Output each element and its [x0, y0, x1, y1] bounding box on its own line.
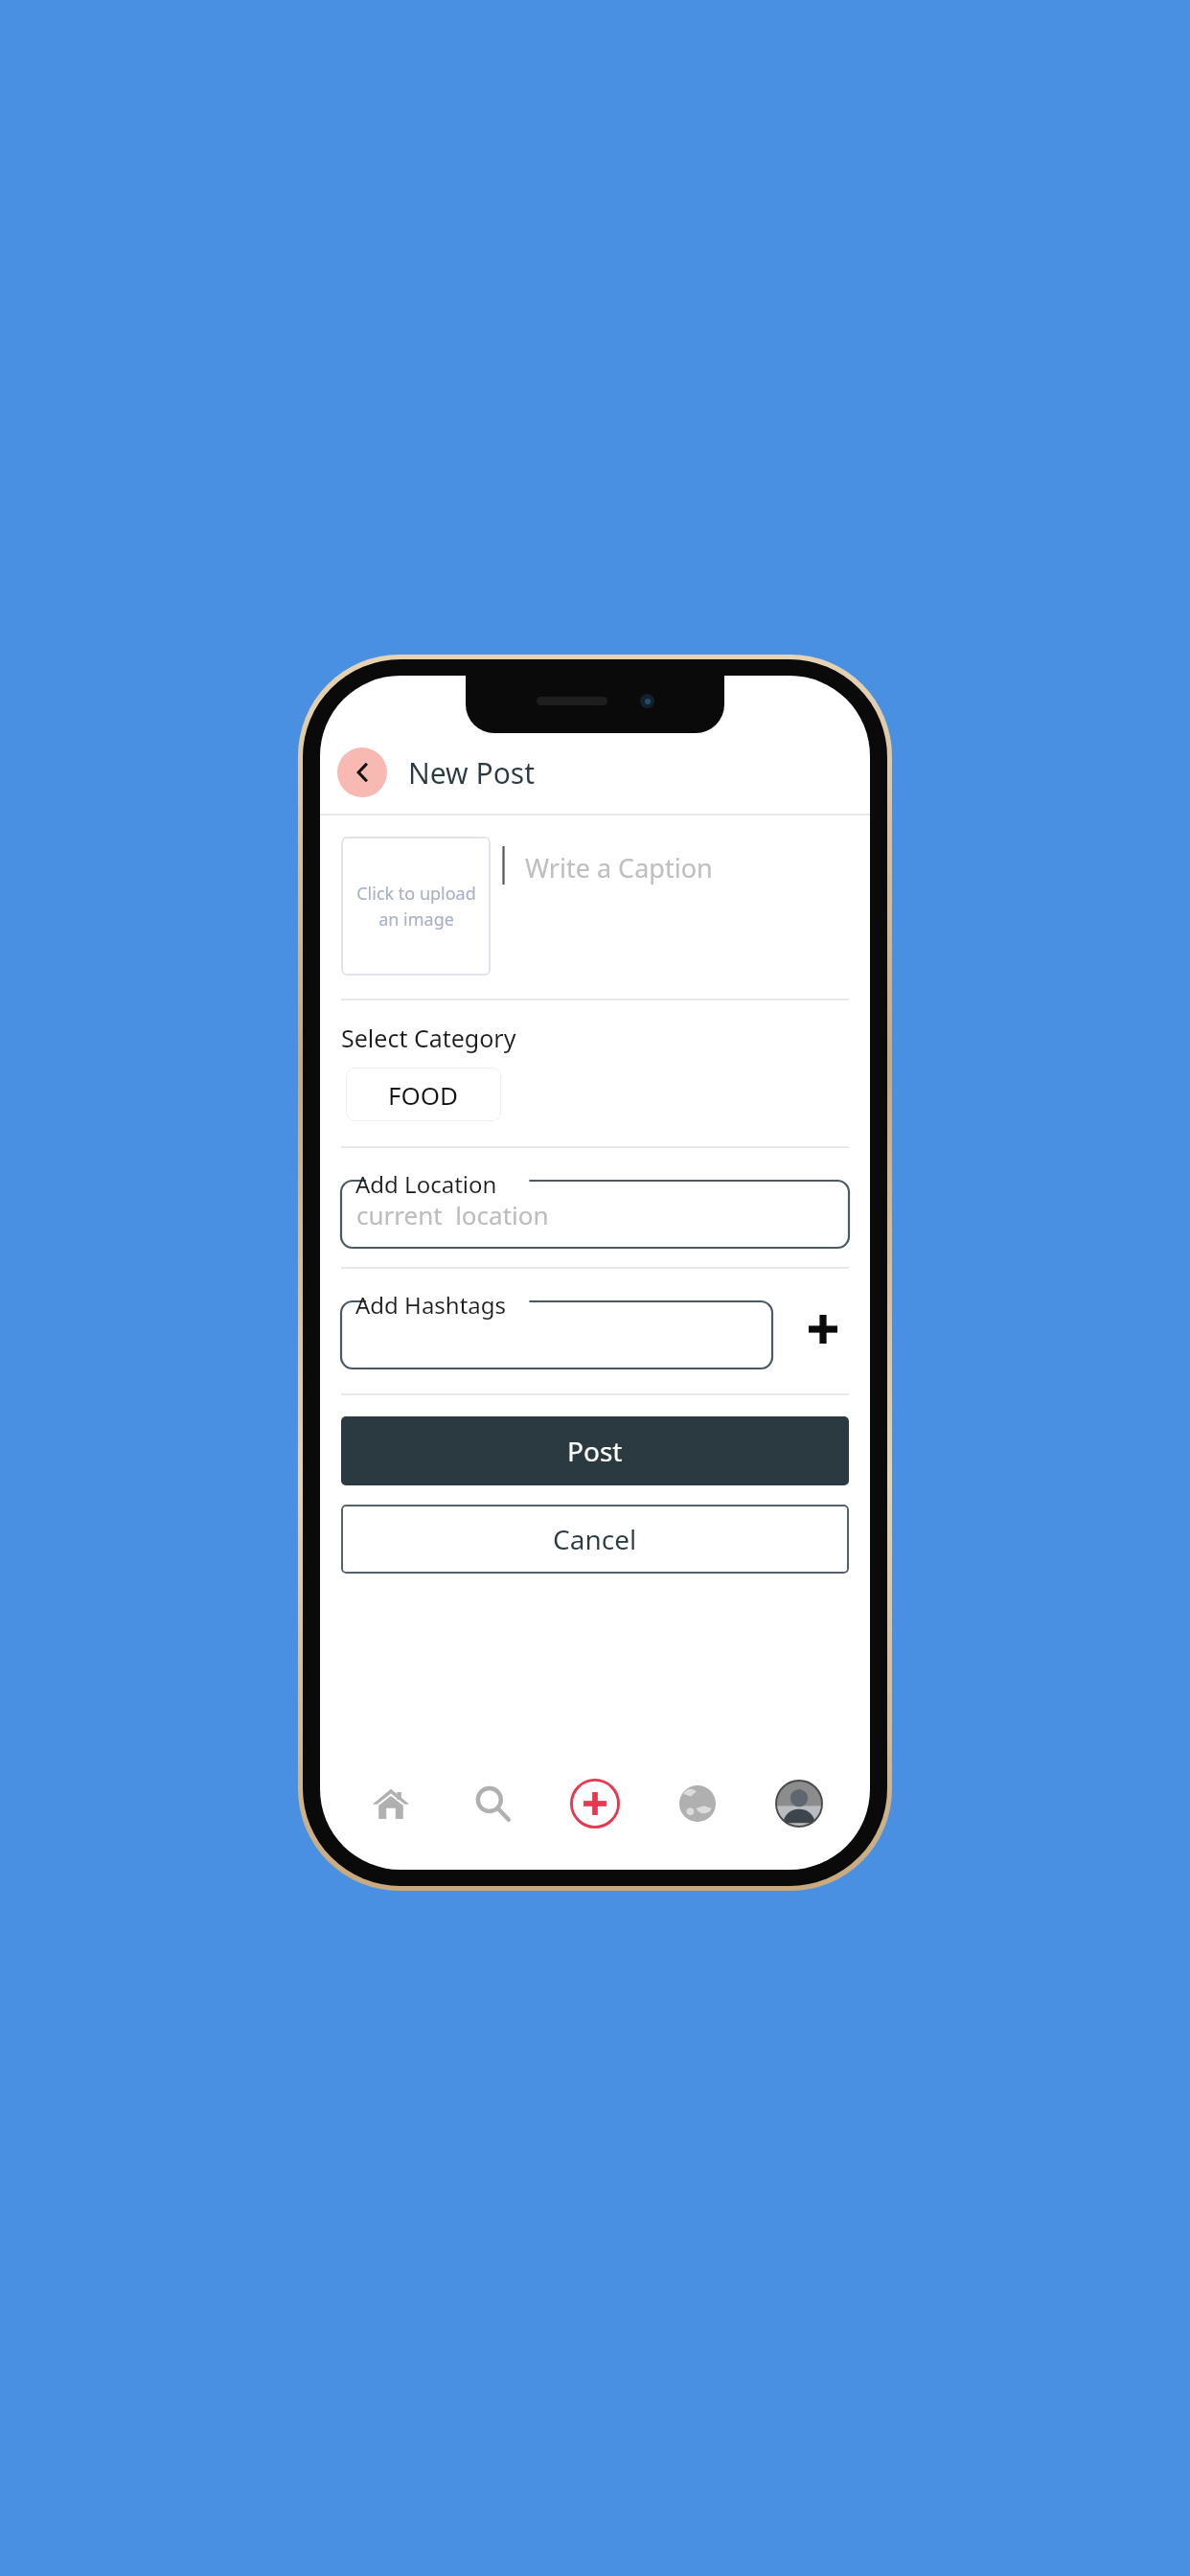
- staticText: New Post: [408, 753, 535, 793]
- button[interactable]: FOOD: [346, 1068, 501, 1121]
- button[interactable]: Write a Caption: [502, 846, 849, 976]
- staticText: Cancel: [553, 1521, 637, 1557]
- button[interactable]: Click to upload an image: [341, 837, 491, 976]
- staticText: Add Location: [355, 1168, 497, 1200]
- button[interactable]: Cancel: [341, 1505, 849, 1574]
- staticText: Write a Caption: [525, 850, 713, 885]
- button[interactable]: Profile: [756, 1760, 842, 1847]
- button[interactable]: Search: [449, 1760, 536, 1847]
- button[interactable]: Home: [348, 1760, 434, 1847]
- button[interactable]: Post: [341, 1416, 849, 1485]
- button[interactable]: New post: [552, 1760, 638, 1847]
- button[interactable]: Add hashtag: [797, 1303, 849, 1355]
- button[interactable]: Explore: [654, 1760, 741, 1847]
- staticText: current location: [356, 1198, 549, 1231]
- staticText: Add Hashtags: [355, 1289, 507, 1321]
- button[interactable]: Back: [337, 747, 387, 797]
- staticText: Click to upload an image: [356, 882, 476, 931]
- staticText: Post: [567, 1433, 623, 1469]
- staticText: Select Category: [341, 1022, 516, 1054]
- staticText: FOOD: [388, 1078, 459, 1112]
